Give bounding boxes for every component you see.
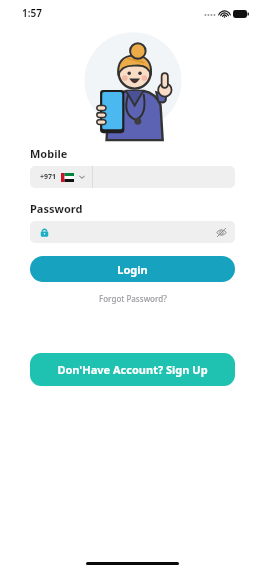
staticText: 1:57 [22,6,42,20]
button[interactable]: Forgot Password? [30,291,235,306]
button[interactable]: Password [30,221,235,243]
staticText: Password [30,201,83,216]
staticText: Login [117,262,148,277]
staticText: Forgot Password? [99,293,167,304]
other: Password [39,227,50,238]
button[interactable]: Show password [212,223,230,241]
button[interactable]: Don'Have Account? Sign Up [30,353,235,386]
button[interactable]: +971 [30,166,235,188]
staticText: +971 [40,172,57,182]
staticText: Mobile [30,146,68,161]
button[interactable]: Login [30,256,235,282]
staticText: Don'Have Account? Sign Up [57,362,208,377]
